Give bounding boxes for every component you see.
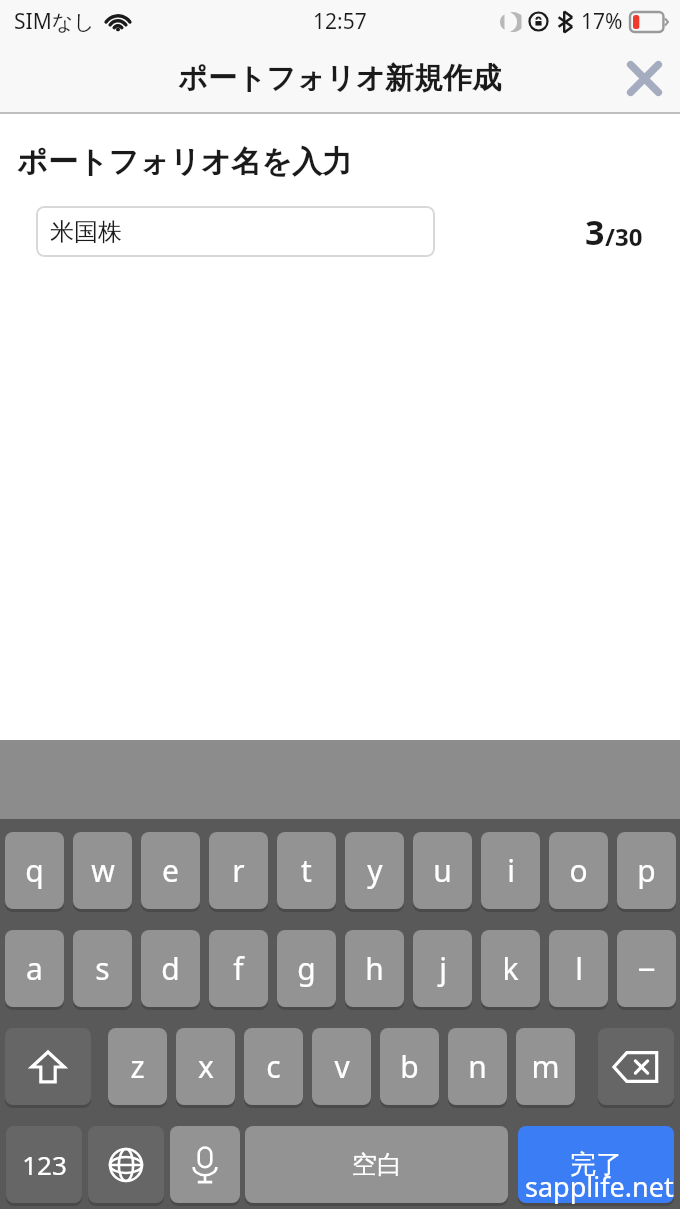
staticText: j	[439, 948, 447, 989]
staticText: n	[468, 1046, 487, 1087]
staticText: −	[637, 947, 656, 991]
staticText: s	[95, 948, 110, 989]
staticText: w	[91, 850, 115, 891]
staticText: l	[575, 948, 583, 989]
button[interactable]: 完了	[518, 1126, 674, 1203]
button[interactable]: Dictation	[170, 1126, 240, 1203]
button[interactable]: j	[413, 930, 472, 1007]
button[interactable]: p	[617, 832, 676, 909]
button[interactable]: g	[277, 930, 336, 1007]
button[interactable]: d	[141, 930, 200, 1007]
button[interactable]: q	[5, 832, 64, 909]
staticText: /30	[605, 220, 643, 253]
staticText: e	[162, 850, 179, 891]
button[interactable]: o	[549, 832, 608, 909]
button[interactable]: x	[176, 1028, 235, 1105]
staticText: x	[198, 1046, 214, 1087]
staticText: v	[334, 1046, 350, 1087]
button[interactable]: Delete	[598, 1028, 674, 1105]
button[interactable]: w	[73, 832, 132, 909]
staticText: m	[531, 1046, 560, 1087]
staticText: b	[400, 1046, 419, 1087]
button[interactable]: 閉じる	[608, 42, 680, 114]
staticText: c	[266, 1046, 281, 1087]
button[interactable]: u	[413, 832, 472, 909]
staticText: sapplife.net	[525, 1168, 674, 1205]
button[interactable]: h	[345, 930, 404, 1007]
button[interactable]: s	[73, 930, 132, 1007]
staticText: 完了	[570, 1148, 622, 1181]
button[interactable]: n	[448, 1028, 507, 1105]
button[interactable]: a	[5, 930, 64, 1007]
staticText: y	[367, 850, 383, 891]
staticText: d	[161, 948, 180, 989]
staticText: a	[26, 948, 43, 989]
button[interactable]: 空白	[245, 1126, 508, 1203]
button[interactable]: m	[516, 1028, 575, 1105]
button[interactable]: Switch keyboard	[88, 1126, 164, 1203]
button[interactable]: 123	[6, 1126, 82, 1203]
staticText: r	[232, 850, 245, 891]
staticText: t	[301, 850, 312, 891]
staticText: g	[297, 948, 316, 989]
button[interactable]: 米国株	[36, 206, 435, 257]
staticText: ポートフォリオ新規作成	[178, 60, 502, 97]
button[interactable]: k	[481, 930, 540, 1007]
button[interactable]: i	[481, 832, 540, 909]
button[interactable]: t	[277, 832, 336, 909]
button[interactable]: y	[345, 832, 404, 909]
staticText: h	[365, 948, 384, 989]
staticText: i	[507, 850, 515, 891]
staticText: k	[502, 948, 519, 989]
staticText: 17%	[581, 7, 623, 36]
button[interactable]: Shift	[5, 1028, 91, 1105]
staticText: 米国株	[50, 217, 122, 247]
button[interactable]: z	[108, 1028, 167, 1105]
staticText: z	[130, 1046, 145, 1087]
button[interactable]: v	[312, 1028, 371, 1105]
button[interactable]: e	[141, 832, 200, 909]
staticText: ポートフォリオ名を入力	[17, 143, 352, 181]
button[interactable]: l	[549, 930, 608, 1007]
button[interactable]: b	[380, 1028, 439, 1105]
staticText: 12:57	[313, 7, 367, 36]
staticText: p	[637, 850, 656, 891]
button[interactable]: r	[209, 832, 268, 909]
staticText: 空白	[352, 1149, 402, 1180]
staticText: 3	[585, 209, 605, 255]
staticText: SIMなし	[14, 7, 95, 36]
staticText: q	[25, 850, 44, 891]
staticText: o	[569, 850, 588, 891]
staticText: u	[433, 850, 452, 891]
button[interactable]: f	[209, 930, 268, 1007]
staticText: f	[233, 948, 244, 989]
staticText: 123	[22, 1147, 67, 1182]
button[interactable]: −	[617, 930, 676, 1007]
button[interactable]: c	[244, 1028, 303, 1105]
